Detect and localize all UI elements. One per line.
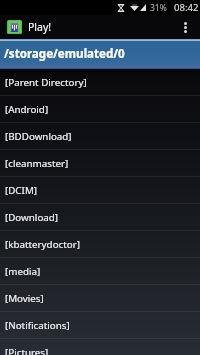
button[interactable]: [Download] <box>0 204 200 231</box>
button[interactable]: [BDDownload] <box>0 123 200 150</box>
staticText: 08:42 <box>174 1 199 14</box>
staticText: [cleanmaster] <box>5 157 69 170</box>
staticText: [Pictures] <box>5 346 49 355</box>
staticText: [BDDownload] <box>5 130 72 143</box>
staticText: /storage/emulated/0 <box>4 46 125 62</box>
button[interactable]: [Pictures] <box>0 339 200 355</box>
button[interactable]: [kbatterydoctor] <box>0 231 200 258</box>
staticText: [Notifications] <box>5 319 70 332</box>
button[interactable]: [media] <box>0 258 200 285</box>
staticText: [media] <box>5 265 41 278</box>
staticText: [kbatterydoctor] <box>5 238 81 251</box>
button[interactable]: [Parent Directory] <box>0 69 200 96</box>
button[interactable]: [DCIM] <box>0 177 200 204</box>
staticText: [Android] <box>5 103 49 116</box>
button[interactable]: [cleanmaster] <box>0 150 200 177</box>
staticText: [DCIM] <box>5 184 37 197</box>
staticText: 31% <box>150 2 167 14</box>
button[interactable]: More options <box>172 15 200 39</box>
button[interactable]: [Android] <box>0 96 200 123</box>
staticText: Play! <box>28 20 52 34</box>
button[interactable]: [Movies] <box>0 285 200 312</box>
button[interactable]: /storage/emulated/0 <box>0 39 200 69</box>
staticText: [Parent Directory] <box>5 76 87 89</box>
staticText: [Download] <box>5 211 59 224</box>
staticText: [Movies] <box>5 292 44 305</box>
button[interactable]: [Notifications] <box>0 312 200 339</box>
